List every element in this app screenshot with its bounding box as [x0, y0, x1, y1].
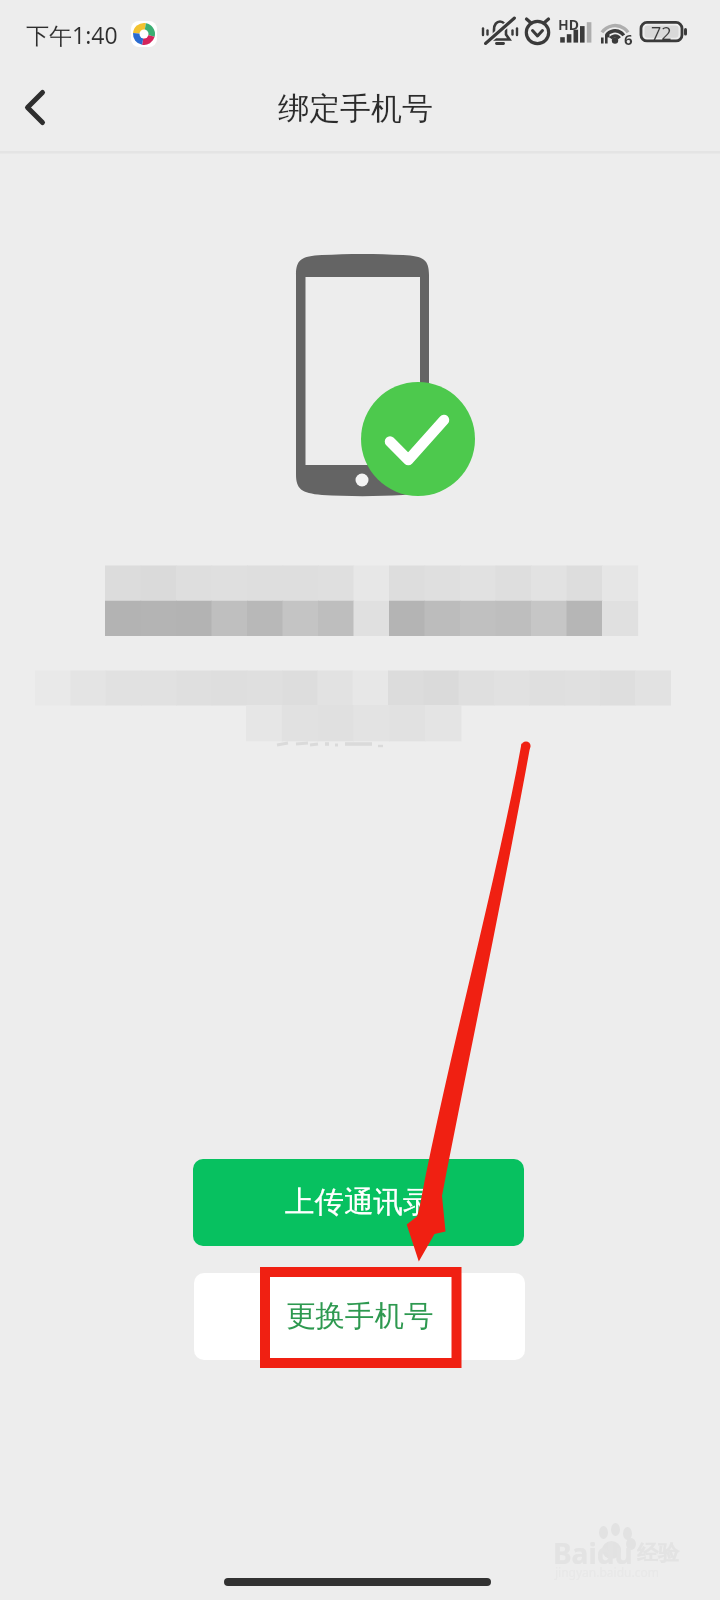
button[interactable]: 上传通讯录: [193, 1159, 524, 1246]
staticText: HD: [558, 15, 579, 34]
button[interactable]: 更换手机号: [194, 1273, 525, 1360]
staticText: 经验: [637, 1540, 679, 1566]
staticText: 6: [624, 29, 633, 49]
staticText: 更换手机号: [286, 1298, 434, 1335]
staticText: 72: [651, 21, 672, 46]
staticText: 上传通讯录: [285, 1184, 433, 1221]
staticText: Baidu: [553, 1534, 633, 1572]
staticText: 下午1:40: [26, 19, 118, 50]
staticText: 绑定手机号: [278, 89, 433, 128]
button[interactable]: Back: [0, 63, 88, 151]
